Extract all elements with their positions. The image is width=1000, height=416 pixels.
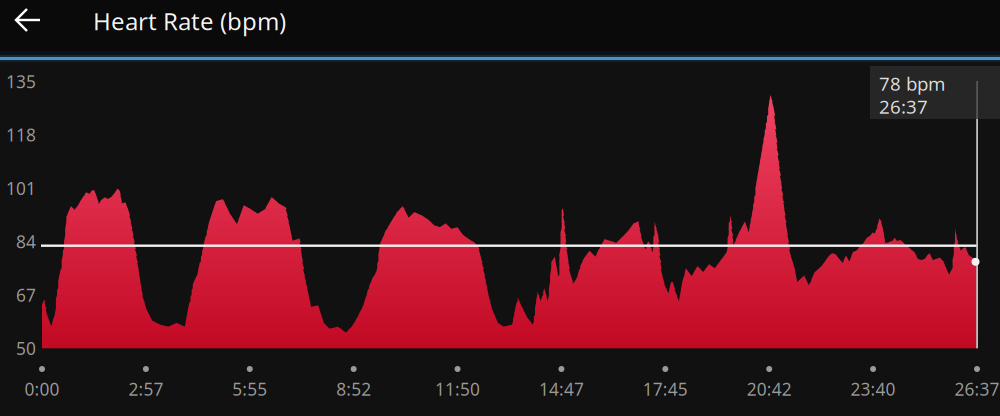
staticText: 67	[16, 283, 36, 306]
staticText: 118	[6, 123, 36, 146]
staticText: 14:47	[539, 377, 584, 400]
staticText: 20:42	[747, 377, 792, 400]
staticText: 5:55	[232, 377, 267, 400]
staticText: 135	[6, 70, 36, 93]
staticText: 78 bpm	[879, 71, 945, 96]
staticText: 11:50	[435, 377, 480, 400]
staticText: 26:37	[879, 94, 928, 119]
staticText: 2:57	[128, 377, 163, 400]
staticText: Heart Rate (bpm)	[93, 5, 286, 37]
staticText: 50	[16, 337, 36, 360]
staticText: 0:00	[24, 377, 59, 400]
button[interactable]: Back	[0, 0, 56, 42]
staticText: 23:40	[851, 377, 896, 400]
staticText: 84	[16, 230, 36, 253]
staticText: 26:37	[954, 377, 999, 400]
staticText: 101	[6, 177, 36, 200]
staticText: 17:45	[643, 377, 688, 400]
staticText: 8:52	[336, 377, 371, 400]
